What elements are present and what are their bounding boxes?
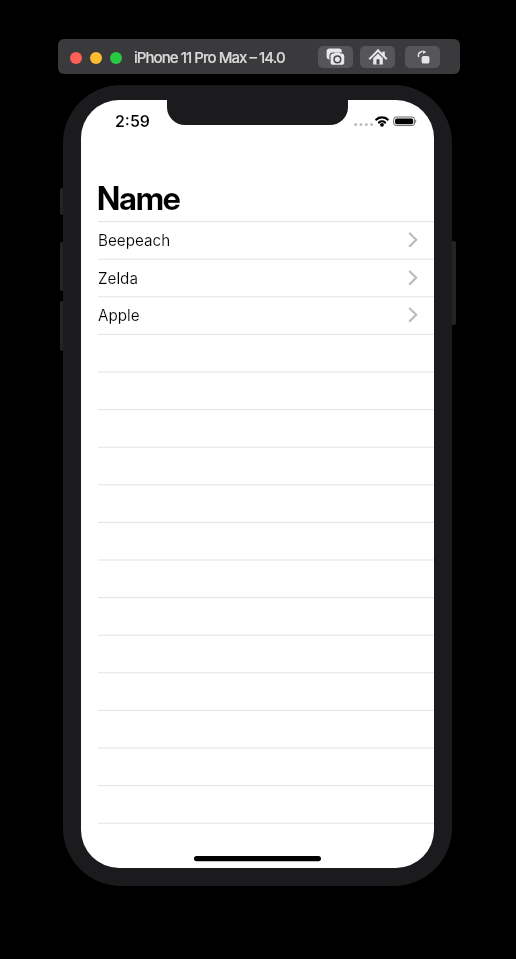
staticText: 2:59 — [115, 112, 150, 131]
button[interactable]: Apple — [81, 296, 434, 334]
button[interactable] — [90, 52, 102, 64]
staticText: Name — [97, 179, 180, 218]
staticText: Apple — [98, 306, 140, 324]
button[interactable]: Zelda — [81, 259, 434, 297]
staticText: Beepeach — [98, 231, 171, 249]
button[interactable] — [360, 46, 395, 68]
button[interactable]: Beepeach — [81, 221, 434, 259]
button[interactable] — [70, 52, 82, 64]
button[interactable] — [405, 46, 440, 68]
staticText: iPhone 11 Pro Max – 14.0 — [134, 48, 285, 66]
button[interactable] — [110, 52, 122, 64]
button[interactable] — [318, 46, 353, 68]
staticText: Zelda — [98, 269, 138, 287]
